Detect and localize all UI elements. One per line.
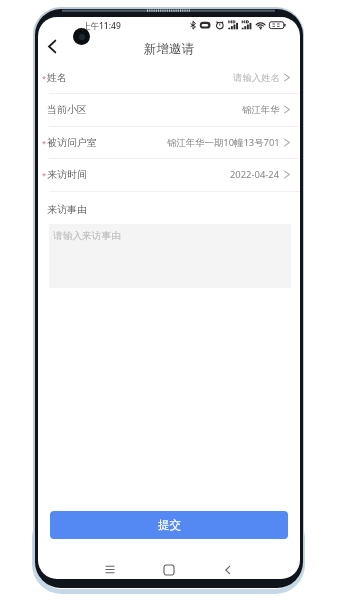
staticText: 来访事由	[47, 203, 87, 216]
staticText: 当前小区	[47, 103, 87, 116]
staticText: 来访时间	[47, 168, 87, 181]
button[interactable]: *	[38, 158, 300, 191]
staticText: 提交	[158, 518, 181, 532]
staticText: 锦江年华一期10幢13号701	[167, 136, 280, 149]
staticText: 锦江年华	[242, 104, 280, 116]
button[interactable]: 请输入来访事由	[49, 224, 291, 288]
button[interactable]: Home	[158, 559, 180, 579]
staticText: *	[42, 170, 46, 180]
staticText: *	[42, 73, 46, 83]
staticText: 姓名	[47, 71, 67, 84]
staticText: 2022-04-24	[230, 168, 280, 181]
staticText: 新增邀请	[144, 41, 194, 57]
staticText: 被访问户室	[47, 136, 97, 149]
staticText: 请输入来访事由	[53, 230, 121, 242]
button[interactable]: *	[38, 126, 300, 159]
staticText: *	[42, 138, 46, 148]
button[interactable]: Back	[39, 33, 65, 59]
button[interactable]: Recent apps	[99, 559, 121, 579]
button[interactable]: 当前小区	[38, 93, 300, 126]
button[interactable]: 提交	[50, 511, 288, 539]
button[interactable]: Back	[217, 559, 239, 579]
staticText: 请输入姓名	[233, 72, 280, 84]
staticText: 上午11:49	[82, 20, 121, 32]
button[interactable]: *	[38, 61, 300, 94]
